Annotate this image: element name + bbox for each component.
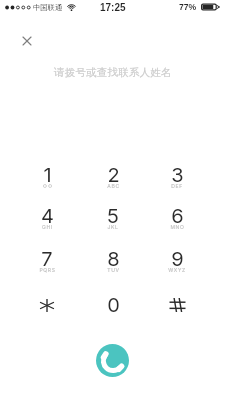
staticText: 1	[43, 163, 52, 185]
button[interactable]: 0	[87, 293, 139, 331]
staticText: 6	[171, 204, 184, 226]
staticText: JKL	[107, 224, 119, 230]
staticText: TUV	[107, 267, 120, 273]
staticText: DEF	[171, 183, 183, 189]
button[interactable]: 4	[21, 204, 73, 242]
button[interactable]: 3	[151, 163, 203, 201]
staticText: 3	[171, 163, 184, 185]
button[interactable]: 2	[87, 163, 139, 201]
button[interactable]: 6	[151, 204, 203, 242]
button[interactable]: 7	[21, 247, 73, 285]
staticText: 7	[41, 247, 53, 269]
staticText: 中国联通	[33, 3, 63, 12]
staticText: 8	[107, 247, 120, 269]
staticText: PQRS	[39, 267, 56, 273]
staticText: 9	[171, 247, 184, 269]
button[interactable]: 1	[21, 163, 73, 201]
staticText: 4	[41, 204, 54, 226]
staticText: 5	[107, 204, 119, 226]
staticText: 77%	[179, 2, 197, 12]
button[interactable]: 9	[151, 247, 203, 285]
button[interactable]	[151, 293, 203, 331]
staticText: ABC	[107, 183, 120, 189]
button[interactable]	[21, 293, 73, 331]
staticText: WXYZ	[168, 267, 186, 273]
staticText: GHI	[42, 224, 53, 230]
staticText: 0	[107, 293, 120, 315]
button[interactable]: Close	[15, 29, 39, 53]
staticText: 2	[107, 163, 120, 185]
button[interactable]: Call	[96, 344, 129, 377]
button[interactable]: 5	[87, 204, 139, 242]
staticText: 请拨号或查找联系人姓名	[54, 66, 172, 79]
staticText: MNO	[170, 224, 185, 230]
button[interactable]: 8	[87, 247, 139, 285]
staticText: 17:25	[100, 2, 126, 13]
